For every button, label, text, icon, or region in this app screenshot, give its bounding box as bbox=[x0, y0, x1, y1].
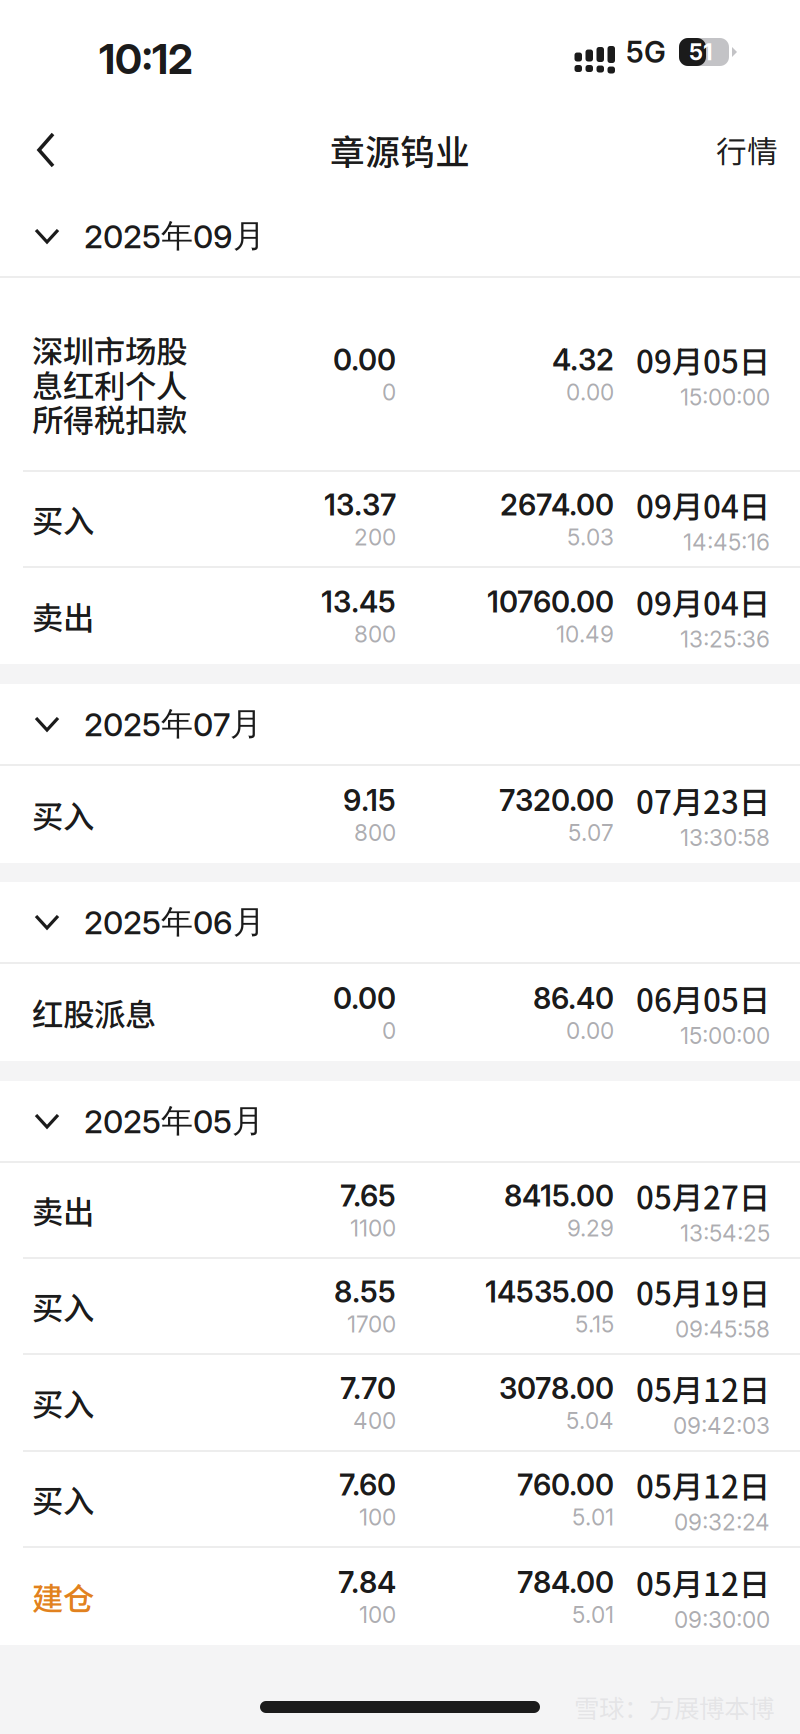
staticText: 800 bbox=[354, 819, 396, 846]
staticText: 05月12日 bbox=[636, 1366, 770, 1411]
staticText: 8415.00 bbox=[504, 1178, 614, 1213]
staticText: 3078.00 bbox=[499, 1370, 614, 1406]
button[interactable]: 买入 bbox=[0, 1452, 800, 1546]
staticText: 5.15 bbox=[575, 1310, 614, 1338]
staticText: 7.84 bbox=[338, 1564, 396, 1600]
staticText: 05月19日 bbox=[636, 1269, 770, 1314]
button[interactable]: 红股派息 bbox=[0, 964, 800, 1061]
staticText: 买入 bbox=[32, 1380, 94, 1425]
staticText: 784.00 bbox=[517, 1564, 614, 1600]
button[interactable]: 买入 bbox=[0, 1259, 800, 1353]
staticText: 15:00:00 bbox=[680, 383, 770, 411]
staticText: 5.01 bbox=[572, 1601, 614, 1628]
staticText: 0.00 bbox=[566, 1017, 614, 1044]
staticText: 13:54:25 bbox=[680, 1219, 770, 1247]
staticText: 2025年05月 bbox=[84, 1101, 264, 1141]
staticText: 5.07 bbox=[568, 819, 614, 846]
staticText: 7.65 bbox=[340, 1178, 396, 1213]
staticText: 买入 bbox=[32, 1476, 94, 1522]
staticText: 09月04日 bbox=[636, 579, 770, 624]
button[interactable]: 2025年06月 bbox=[0, 882, 800, 962]
staticText: 05月27日 bbox=[636, 1173, 770, 1218]
staticText: 2674.00 bbox=[500, 487, 614, 522]
staticText: 所得税扣款 bbox=[32, 396, 187, 441]
staticText: 06月05日 bbox=[636, 976, 770, 1021]
staticText: 5.01 bbox=[572, 1503, 614, 1531]
staticText: 13.45 bbox=[321, 584, 396, 619]
staticText: 13.37 bbox=[324, 487, 396, 522]
staticText: 红股派息 bbox=[32, 990, 156, 1035]
staticText: 0 bbox=[382, 1017, 396, 1044]
button[interactable]: 买入 bbox=[0, 1355, 800, 1450]
staticText: 2025年06月 bbox=[84, 902, 265, 942]
staticText: 10:12 bbox=[99, 34, 193, 84]
staticText: 5G bbox=[626, 34, 666, 70]
button[interactable]: 深圳市场股 bbox=[0, 278, 800, 470]
staticText: 760.00 bbox=[517, 1467, 614, 1502]
staticText: 7.60 bbox=[339, 1467, 396, 1502]
staticText: 5.03 bbox=[567, 523, 614, 551]
staticText: 86.40 bbox=[533, 980, 614, 1016]
staticText: 09:45:58 bbox=[675, 1315, 770, 1343]
staticText: 卖出 bbox=[32, 1187, 94, 1233]
button[interactable]: 买入 bbox=[0, 766, 800, 863]
staticText: 09:42:03 bbox=[673, 1412, 770, 1439]
staticText: 14:45:16 bbox=[683, 528, 770, 556]
staticText: 09月05日 bbox=[636, 337, 770, 382]
staticText: 800 bbox=[354, 620, 396, 648]
staticText: 09月04日 bbox=[636, 482, 770, 527]
staticText: 7320.00 bbox=[499, 782, 614, 818]
button[interactable]: 2025年07月 bbox=[0, 684, 800, 764]
staticText: 09:30:00 bbox=[674, 1606, 770, 1633]
staticText: 10760.00 bbox=[487, 584, 614, 619]
staticText: 息红利个人 bbox=[32, 361, 187, 407]
staticText: 1100 bbox=[350, 1214, 396, 1242]
button[interactable]: 返回 bbox=[0, 104, 92, 196]
staticText: 100 bbox=[359, 1503, 396, 1531]
staticText: 14535.00 bbox=[485, 1274, 614, 1309]
staticText: 雪球：方展博本博 bbox=[574, 1689, 774, 1725]
staticText: 0.00 bbox=[333, 342, 396, 377]
staticText: 07月23日 bbox=[636, 778, 770, 823]
staticText: 1700 bbox=[347, 1310, 396, 1338]
staticText: 05月12日 bbox=[636, 1560, 770, 1605]
staticText: 15:00:00 bbox=[680, 1022, 770, 1049]
staticText: 09:32:24 bbox=[674, 1508, 770, 1536]
staticText: 深圳市场股 bbox=[32, 327, 187, 372]
staticText: 0.00 bbox=[333, 980, 396, 1016]
staticText: 200 bbox=[354, 523, 396, 551]
staticText: 行情 bbox=[716, 128, 778, 172]
button[interactable]: 行情 bbox=[694, 104, 800, 196]
staticText: 买入 bbox=[32, 496, 94, 542]
staticText: 卖出 bbox=[32, 593, 94, 639]
button[interactable]: 2025年09月 bbox=[0, 196, 800, 276]
staticText: 7.70 bbox=[340, 1370, 396, 1406]
staticText: 9.15 bbox=[343, 782, 396, 818]
staticText: 100 bbox=[359, 1601, 396, 1628]
button[interactable]: 买入 bbox=[0, 472, 800, 566]
staticText: 13:25:36 bbox=[680, 625, 770, 653]
staticText: 400 bbox=[353, 1407, 396, 1434]
staticText: 买入 bbox=[32, 792, 94, 837]
staticText: 9.29 bbox=[567, 1214, 614, 1242]
staticText: 4.32 bbox=[552, 342, 614, 377]
staticText: 建仓 bbox=[32, 1574, 94, 1619]
button[interactable]: 卖出 bbox=[0, 568, 800, 664]
button[interactable]: 2025年05月 bbox=[0, 1081, 800, 1161]
staticText: 2025年09月 bbox=[84, 216, 265, 256]
staticText: 51 bbox=[689, 38, 713, 66]
staticText: 2025年07月 bbox=[84, 704, 262, 744]
button[interactable]: 建仓 bbox=[0, 1548, 800, 1645]
staticText: 13:30:58 bbox=[680, 824, 770, 851]
staticText: 0 bbox=[382, 378, 396, 406]
staticText: 买入 bbox=[32, 1283, 94, 1329]
staticText: 8.55 bbox=[334, 1274, 396, 1309]
staticText: 05月12日 bbox=[636, 1462, 770, 1507]
staticText: 5.04 bbox=[566, 1407, 614, 1434]
staticText: 10.49 bbox=[556, 620, 614, 648]
staticText: 章源钨业 bbox=[330, 125, 470, 175]
staticText: 0.00 bbox=[566, 378, 614, 406]
button[interactable]: 卖出 bbox=[0, 1163, 800, 1257]
